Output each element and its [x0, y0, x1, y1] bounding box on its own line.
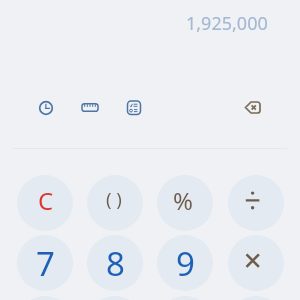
staticText: C [38, 184, 54, 217]
button[interactable]: 8 [87, 235, 143, 291]
button[interactable] [228, 175, 284, 231]
button[interactable]: 9 [157, 235, 213, 291]
staticText: % [173, 184, 193, 217]
button[interactable] [74, 92, 106, 124]
button[interactable] [228, 235, 284, 291]
button[interactable] [17, 296, 73, 300]
button[interactable]: % [157, 175, 213, 231]
button[interactable] [30, 92, 62, 124]
button[interactable] [228, 296, 284, 300]
staticText: 1,925,000 [186, 11, 268, 36]
staticText: 9 [176, 241, 195, 286]
staticText: 8 [106, 241, 125, 286]
button[interactable] [238, 92, 270, 124]
button[interactable]: ( ) [87, 175, 143, 231]
button[interactable] [87, 296, 143, 300]
button[interactable]: 7 [17, 235, 73, 291]
staticText: 7 [36, 241, 55, 286]
button[interactable] [157, 296, 213, 300]
button[interactable]: C [17, 175, 73, 231]
staticText: ( ) [106, 186, 122, 211]
button[interactable] [118, 92, 150, 124]
